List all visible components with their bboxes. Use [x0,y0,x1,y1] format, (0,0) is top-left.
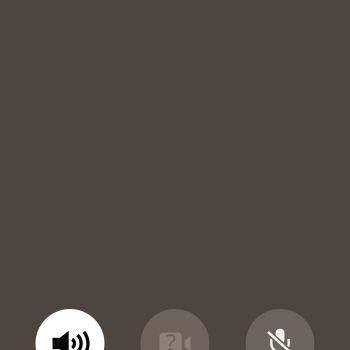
button[interactable]: Unmute [245,309,314,350]
button[interactable]: Turn Camera Off [140,309,209,350]
button[interactable]: Speaker [35,309,104,350]
staticText: ? [166,326,176,350]
